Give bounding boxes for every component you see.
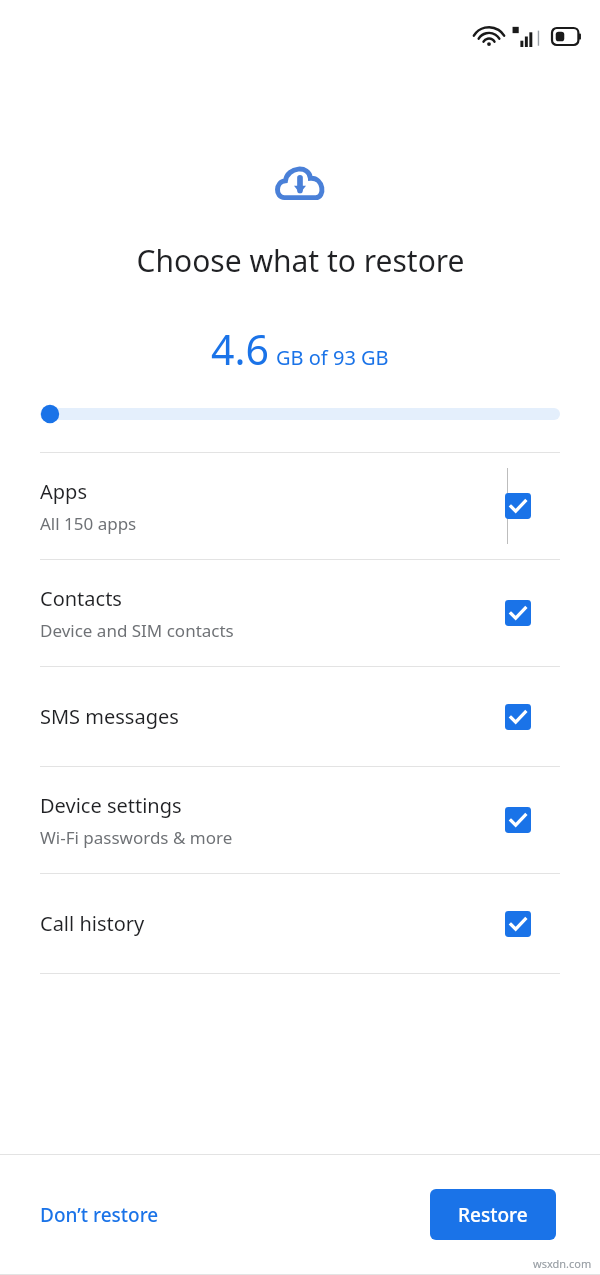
staticText: Contacts <box>40 585 122 612</box>
staticText: 4.6 <box>211 321 269 377</box>
button[interactable]: Call history checkbox <box>504 910 532 938</box>
staticText: Device settings <box>40 792 182 819</box>
button[interactable]: Apps <box>0 453 600 559</box>
staticText: SMS messages <box>40 703 179 730</box>
staticText: wsxdn.com <box>533 1256 592 1271</box>
button[interactable]: Contacts <box>0 560 600 666</box>
button[interactable]: Contacts checkbox <box>504 599 532 627</box>
button[interactable]: Apps checkbox <box>504 492 532 520</box>
staticText: All 150 apps <box>40 512 137 535</box>
button[interactable]: Device settings <box>0 767 600 873</box>
button[interactable]: Don’t restore <box>26 1192 173 1238</box>
staticText: Restore <box>458 1202 528 1228</box>
button[interactable]: Restore <box>430 1189 556 1240</box>
staticText: GB of 93 GB <box>276 344 389 371</box>
button[interactable]: Call history <box>0 874 600 973</box>
staticText: Apps <box>40 478 87 505</box>
button[interactable]: SMS messages <box>0 667 600 766</box>
button[interactable]: SMS messages checkbox <box>504 703 532 731</box>
staticText: Don’t restore <box>40 1202 159 1228</box>
button[interactable]: Device settings checkbox <box>504 806 532 834</box>
staticText: Wi-Fi passwords & more <box>40 826 233 849</box>
staticText: Device and SIM contacts <box>40 619 234 642</box>
staticText: Call history <box>40 910 145 937</box>
staticText: Choose what to restore <box>136 240 465 281</box>
